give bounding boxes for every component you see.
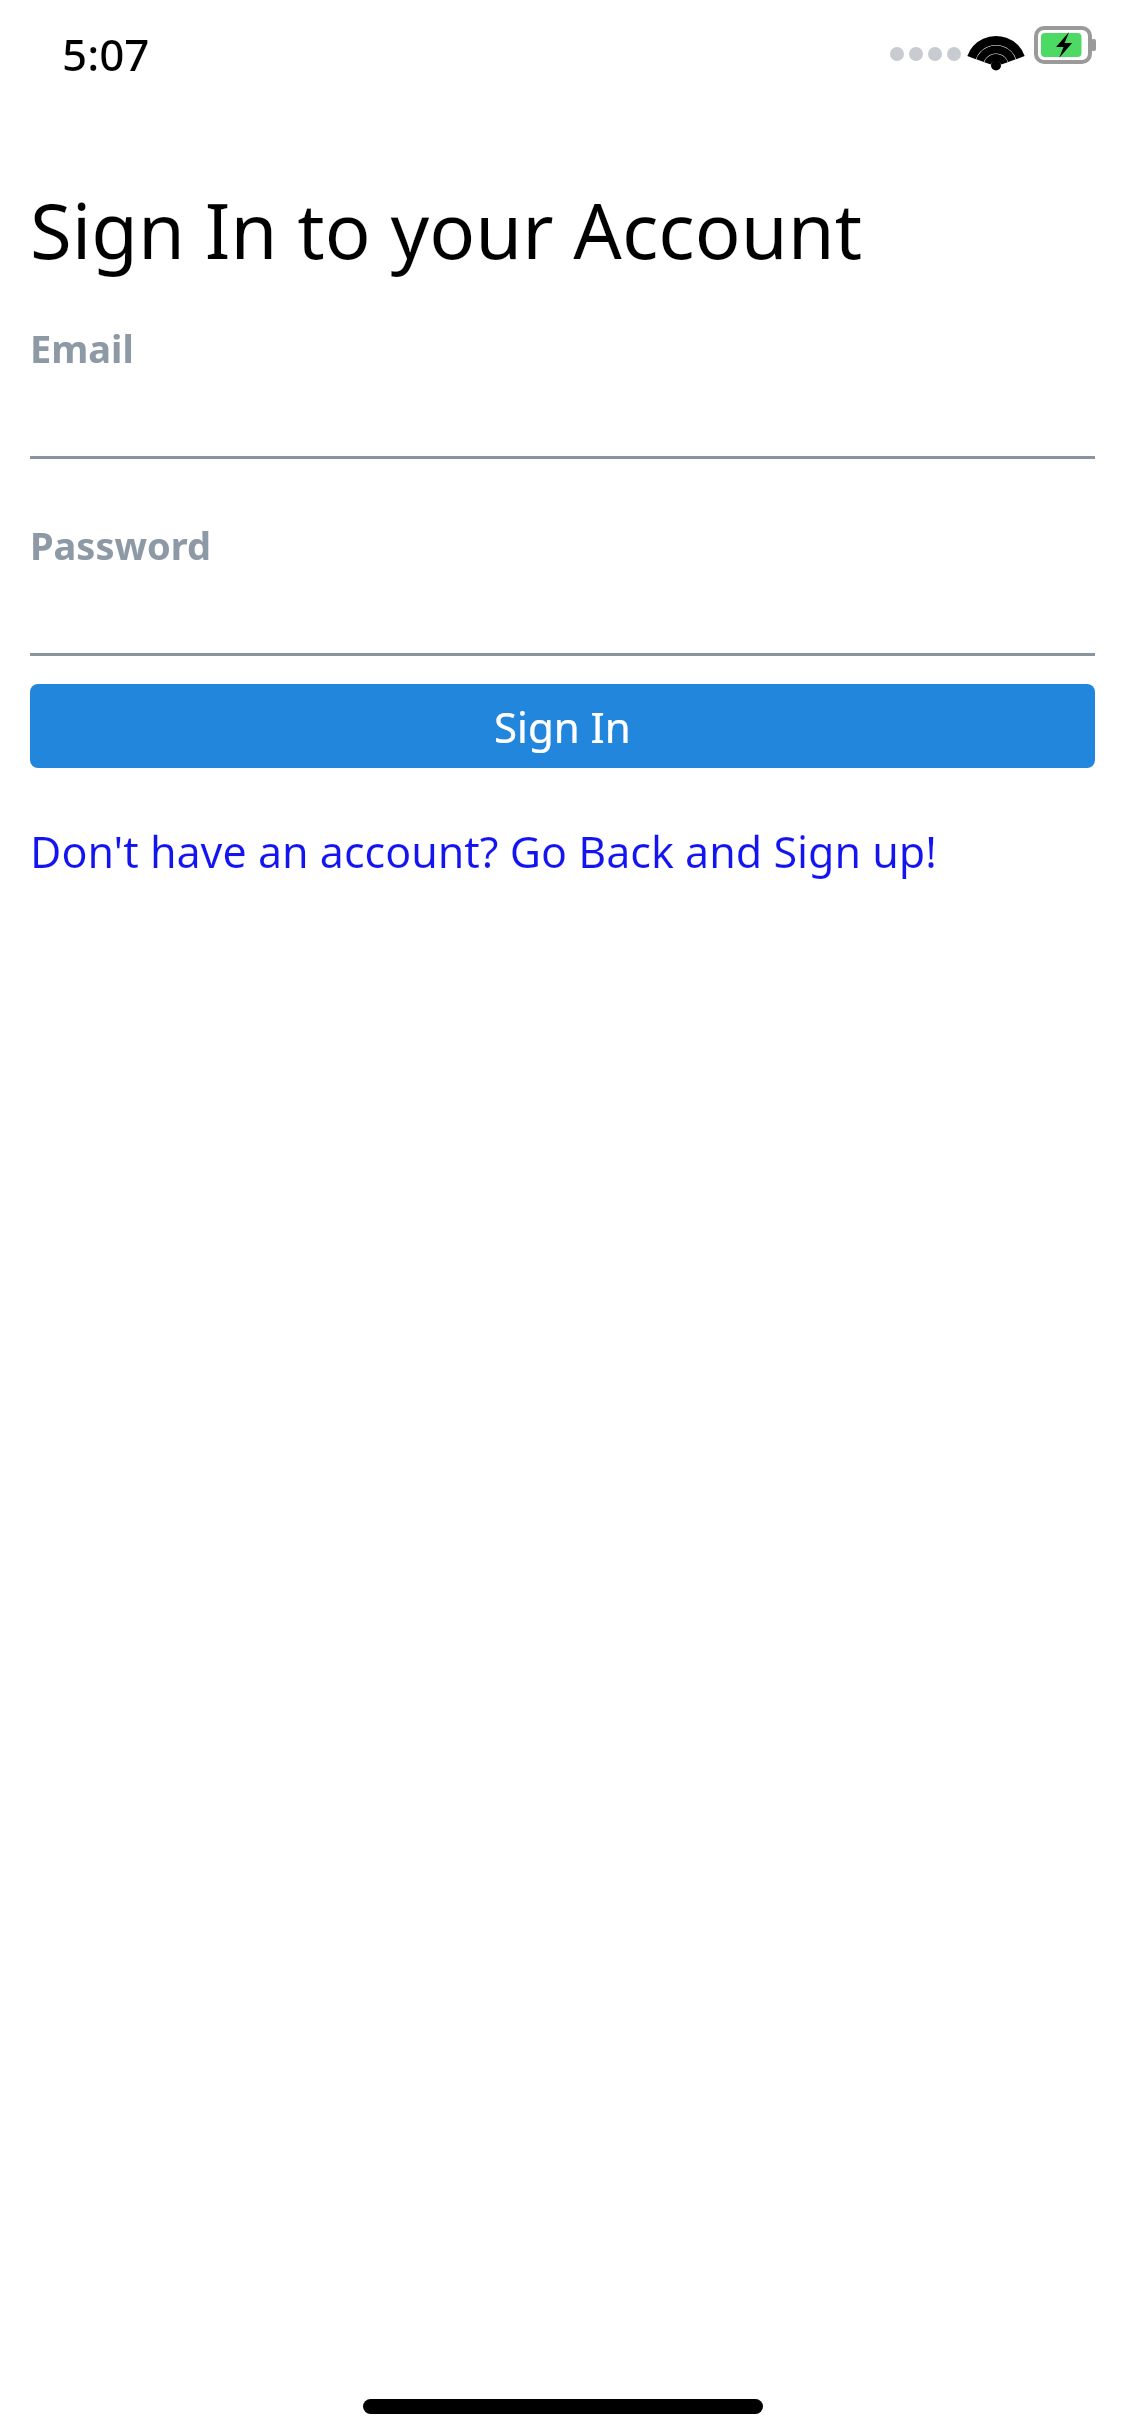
staticText: Email <box>30 322 134 374</box>
staticText: Don't have an account? Go Back and Sign … <box>30 822 937 881</box>
staticText: Sign In <box>494 698 631 755</box>
other: Battery charging <box>1036 28 1098 62</box>
staticText: Password <box>30 519 212 571</box>
staticText: 5:07 <box>62 24 150 84</box>
staticText: Sign In to your Account <box>30 178 925 282</box>
button[interactable]: Don't have an account? Go Back and Sign … <box>30 822 1095 881</box>
other: Wi-Fi <box>968 26 1024 70</box>
button[interactable]: Sign In <box>30 684 1095 768</box>
